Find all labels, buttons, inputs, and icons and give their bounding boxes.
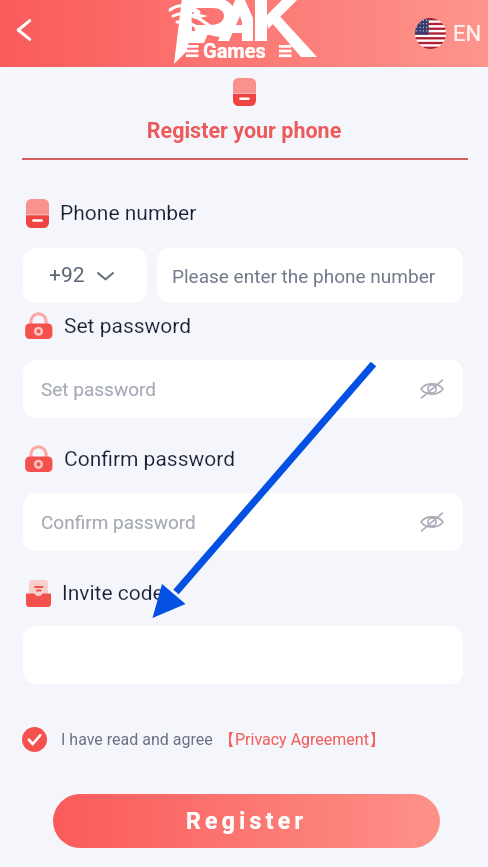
staticText: Games: [203, 39, 266, 62]
staticText: Please enter the phone number: [172, 265, 436, 287]
staticText: Confirm password: [64, 447, 236, 472]
button[interactable]: Show password: [413, 503, 451, 541]
staticText: Set password: [41, 378, 156, 400]
button[interactable]: I have read and agree: [22, 727, 385, 752]
staticText: Phone number: [60, 201, 197, 226]
staticText: I have read and agree: [61, 730, 213, 749]
button[interactable]: Back: [2, 8, 46, 52]
staticText: Confirm password: [41, 511, 196, 533]
staticText: +92: [49, 263, 85, 288]
button[interactable]: Please enter the phone number: [157, 248, 463, 303]
staticText: EN: [453, 21, 482, 47]
staticText: Set password: [64, 314, 192, 339]
staticText: Register: [186, 808, 308, 835]
button[interactable]: Confirm password: [23, 493, 463, 551]
button[interactable]: PAK Games: [172, 0, 324, 67]
button[interactable]: EN: [415, 18, 482, 49]
button[interactable]: Set password: [23, 360, 463, 418]
button[interactable]: Show password: [413, 370, 451, 408]
button[interactable]: +92: [23, 248, 147, 303]
button[interactable]: 【Privacy Agreement】: [219, 730, 385, 750]
staticText: Invite code: [62, 581, 164, 606]
button[interactable]: Register: [53, 794, 440, 848]
staticText: Register your phone: [0, 118, 488, 143]
